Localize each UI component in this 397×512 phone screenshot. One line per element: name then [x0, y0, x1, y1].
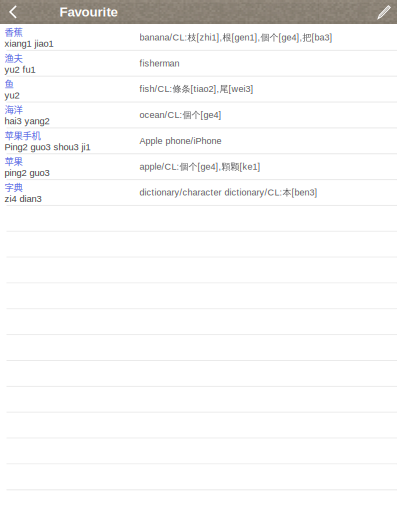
button[interactable]: 渔夫 [0, 51, 397, 76]
staticText: 鱼 [4, 77, 13, 90]
staticText: apple/CL:個个[ge4],顆颗[ke1] [139, 161, 260, 172]
staticText: 海洋 [4, 103, 22, 116]
staticText: Apple phone/iPhone [139, 136, 221, 146]
button[interactable]: 苹果 [0, 154, 397, 179]
button[interactable]: 字典 [0, 180, 397, 205]
button[interactable]: 鱼 [0, 77, 397, 102]
staticText: Ping2 guo3 shou3 ji1 [4, 142, 90, 152]
button[interactable]: 香蕉 [0, 25, 397, 50]
staticText: Favourite [59, 5, 117, 19]
staticText: banana/CL:枝[zhi1],根[gen1],個个[ge4],把[ba3] [139, 32, 332, 43]
staticText: dictionary/character dictionary/CL:本[ben… [139, 187, 317, 198]
button[interactable]: 海洋 [0, 103, 397, 127]
button[interactable]: Back [0, 0, 26, 24]
staticText: hai3 yang2 [4, 116, 49, 126]
staticText: 渔夫 [4, 51, 22, 64]
staticText: fish/CL:條条[tiao2],尾[wei3] [139, 83, 253, 95]
staticText: ocean/CL:個个[ge4] [139, 109, 221, 121]
button[interactable]: 苹果手机 [0, 128, 397, 153]
staticText: 香蕉 [4, 25, 22, 38]
staticText: 字典 [4, 180, 22, 193]
staticText: yu2 fu1 [4, 64, 35, 75]
staticText: ping2 guo3 [4, 168, 49, 178]
staticText: 苹果手机 [4, 128, 40, 142]
staticText: zi4 dian3 [4, 193, 41, 204]
staticText: 苹果 [4, 154, 22, 167]
staticText: yu2 [4, 90, 19, 100]
staticText: fisherman [139, 58, 179, 68]
staticText: xiang1 jiao1 [4, 38, 53, 49]
button[interactable]: Edit [371, 0, 397, 24]
